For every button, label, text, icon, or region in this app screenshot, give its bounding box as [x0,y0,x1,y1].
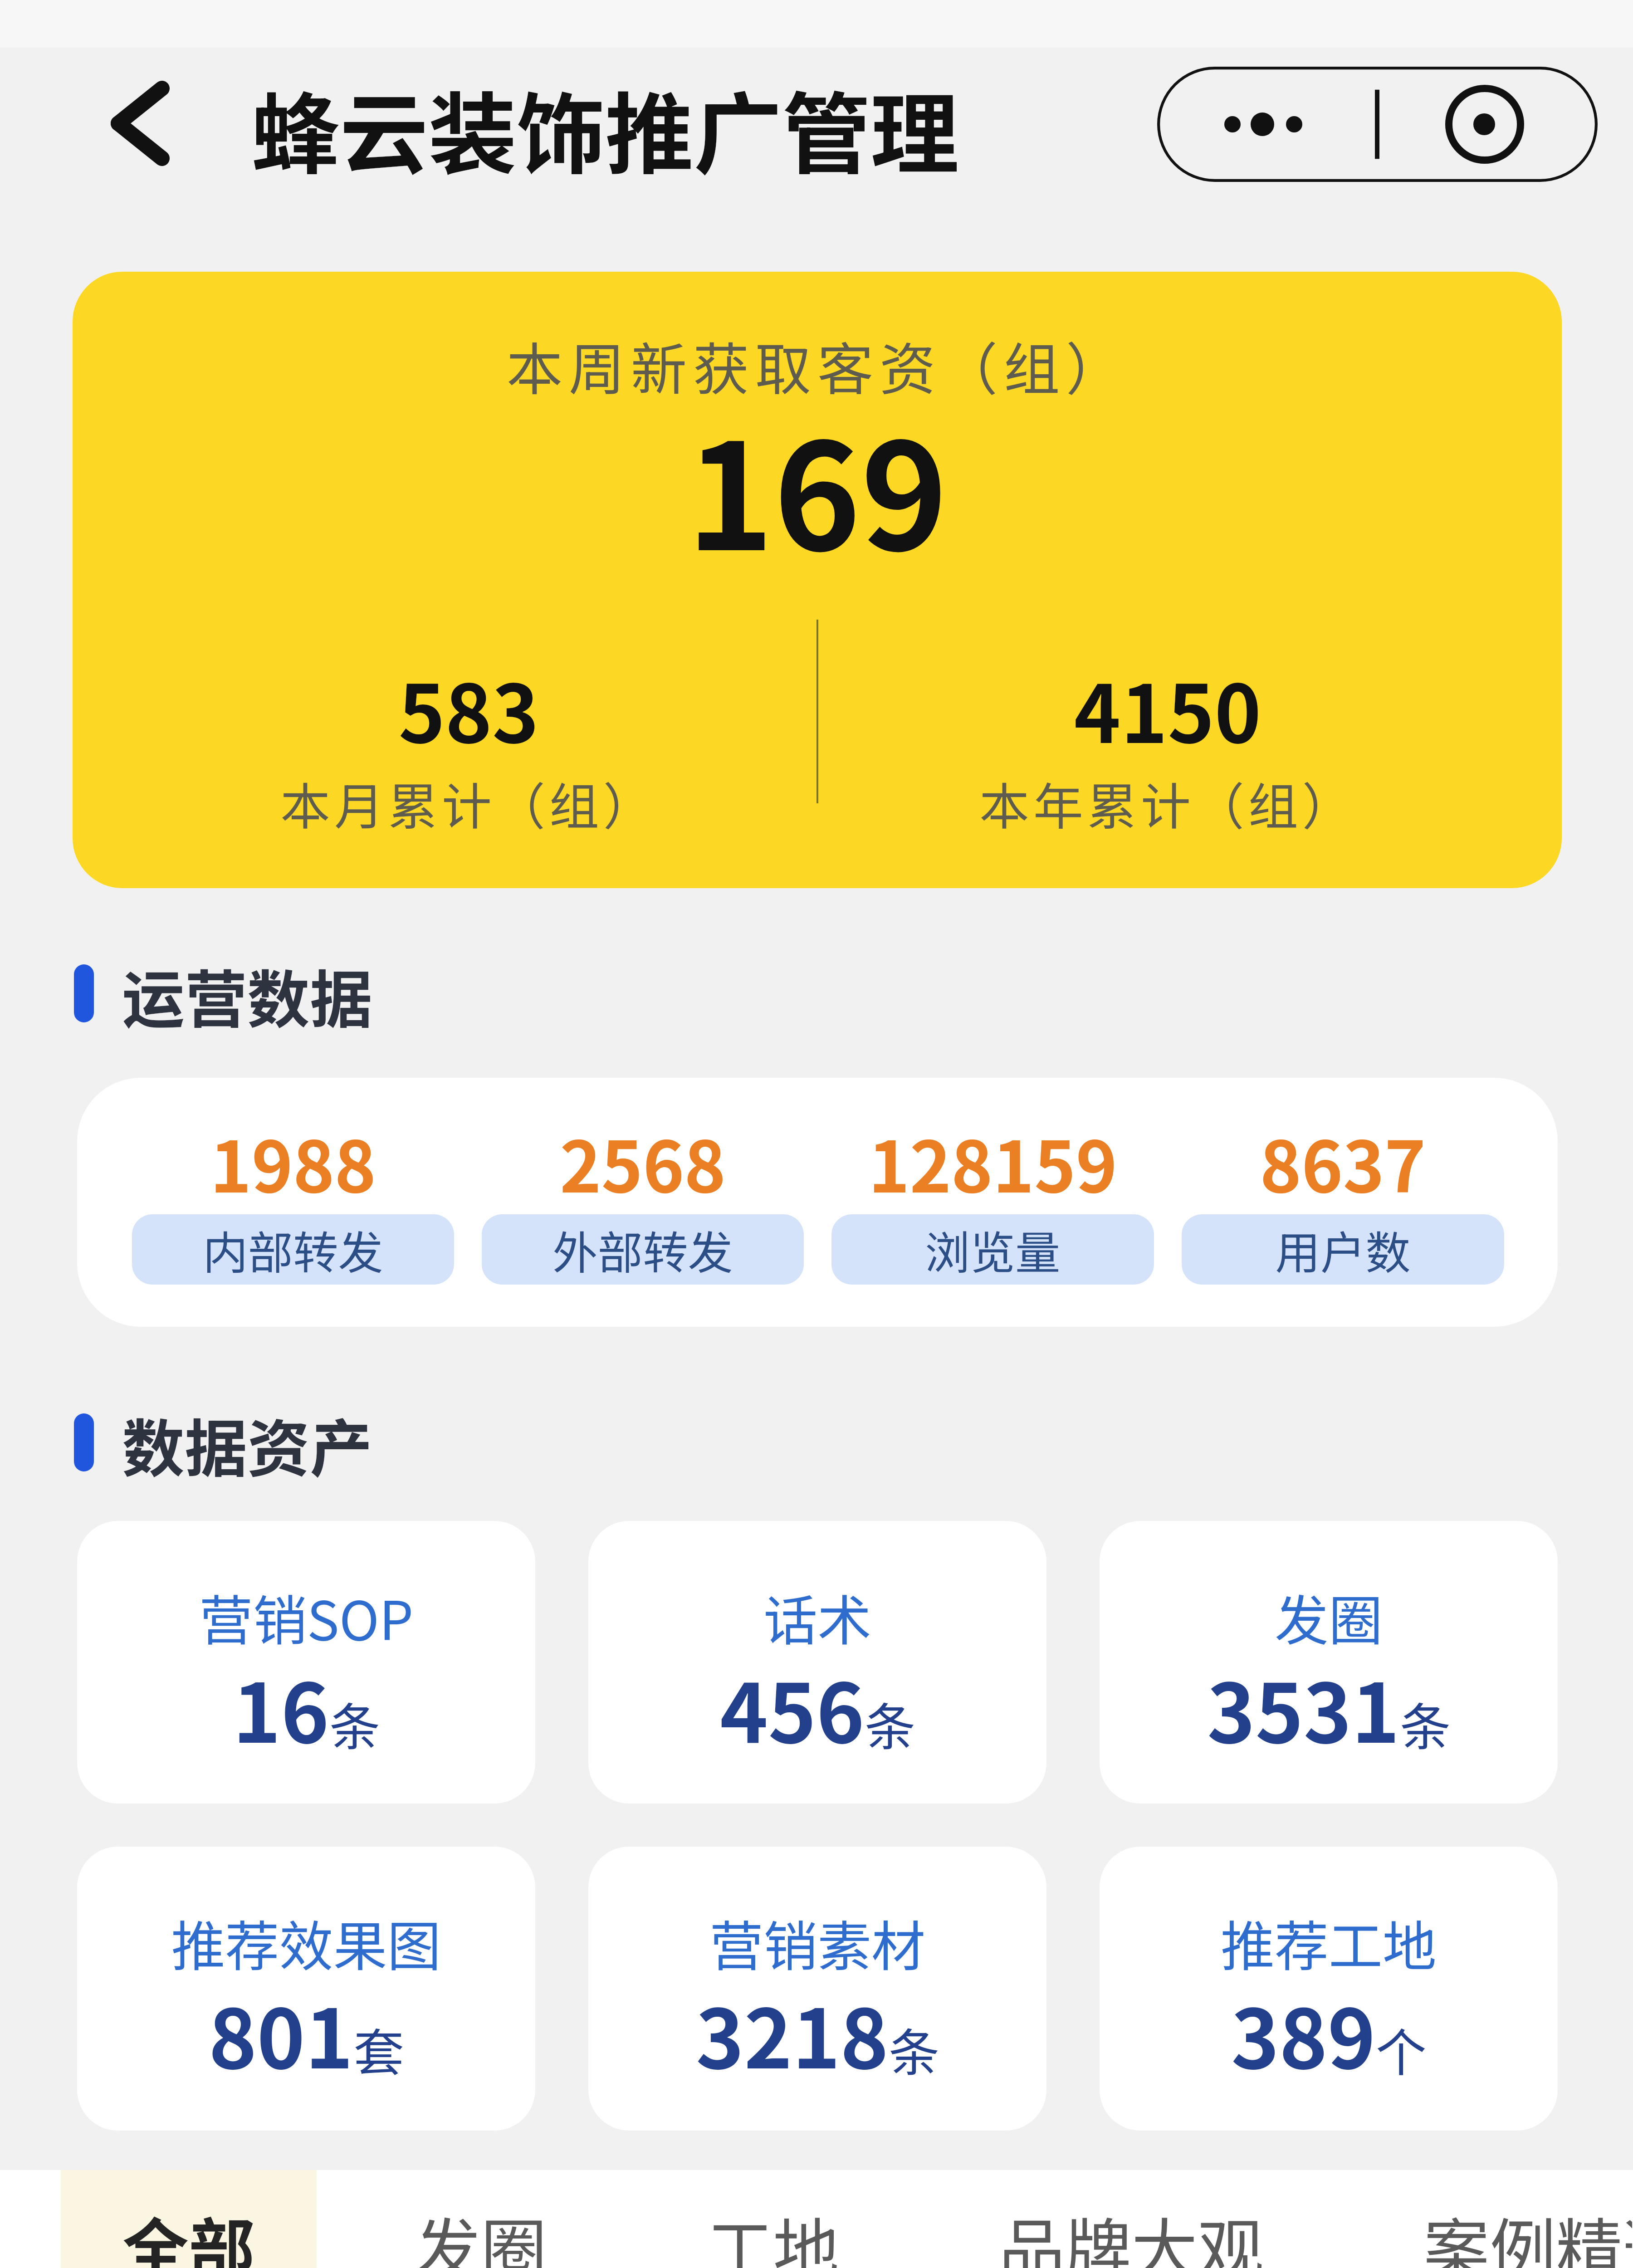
staticText: 8637 [1182,1111,1504,1212]
staticText: 条 [889,2012,939,2086]
staticText: 发圈 [1100,1578,1558,1656]
button[interactable]: 发圈 [1100,1521,1558,1804]
staticText: 运营数据 [122,950,373,1041]
button[interactable]: 本周新获取客资（组） [73,272,1562,888]
staticText: 3531 [1207,1648,1400,1766]
staticText: 全部 [122,2197,255,2268]
staticText: 583 [196,651,741,766]
staticText: 内部转发 [203,1217,383,1282]
staticText: 169 [73,379,1562,593]
staticText: 128159 [831,1111,1154,1212]
staticText: 发圈 [415,2197,547,2268]
button[interactable]: Back [111,81,170,166]
button[interactable]: 发圈 [353,2170,609,2268]
staticText: 条 [865,1686,915,1760]
button[interactable]: 推荐效果图 [77,1847,535,2131]
staticText: 本月累计（组） [196,767,741,839]
staticText: 品牌大观 [999,2197,1264,2268]
staticText: 推荐效果图 [77,1903,535,1981]
button[interactable]: 工地 [645,2170,901,2268]
staticText: 2568 [482,1111,804,1212]
staticText: 本周新获取客资（组） [73,324,1562,406]
button[interactable]: 1988 [132,1078,454,1327]
staticText: 条 [1400,1686,1451,1760]
staticText: 389 [1231,1974,1376,2092]
button[interactable]: More options and close [1157,67,1598,182]
staticText: 1988 [132,1111,454,1212]
staticText: 案例精选 [1423,2197,1632,2268]
button[interactable]: 2568 [482,1078,804,1327]
staticText: 用户数 [1275,1217,1411,1282]
button[interactable]: 8637 [1182,1078,1504,1327]
button[interactable]: 品牌大观 [937,2170,1325,2268]
staticText: 本年累计（组） [895,767,1440,839]
staticText: 外部转发 [552,1217,733,1282]
staticText: 条 [329,1686,380,1760]
button[interactable]: 全部 [61,2170,317,2268]
staticText: 4150 [895,651,1440,766]
staticText: 套 [353,2012,404,2086]
button[interactable]: 推荐工地 [1100,1847,1558,2131]
button[interactable]: 营销素材 [588,1847,1046,2131]
staticText: 16 [233,1648,329,1766]
button[interactable]: 案例精选 [1362,2170,1633,2268]
staticText: 个 [1376,2012,1427,2086]
staticText: 数据资产 [122,1399,373,1490]
staticText: 话术 [588,1578,1046,1656]
staticText: 3218 [696,1974,889,2092]
staticText: 801 [209,1974,353,2092]
staticText: 营销SOP [77,1578,535,1656]
button[interactable]: 话术 [588,1521,1046,1804]
staticText: 营销素材 [588,1903,1046,1981]
staticText: 蜂云装饰推广管理 [251,64,959,192]
staticText: 工地 [707,2197,839,2268]
staticText: 浏览量 [925,1217,1061,1282]
button[interactable]: 营销SOP [77,1521,535,1804]
button[interactable]: 128159 [831,1078,1154,1327]
staticText: 456 [720,1648,865,1766]
staticText: 推荐工地 [1100,1903,1558,1981]
